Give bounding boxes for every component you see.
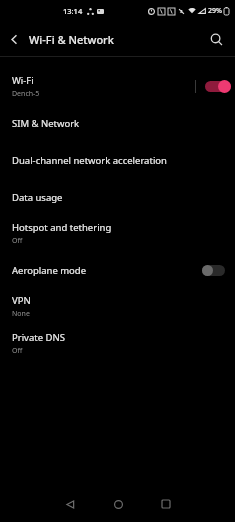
staticText: Dual-channel network acceleration bbox=[12, 154, 167, 167]
staticText: Hotspot and tethering bbox=[12, 221, 112, 234]
staticText: Data usage bbox=[12, 191, 63, 204]
button[interactable]: VPN bbox=[0, 288, 235, 325]
staticText: Dench-5 bbox=[12, 89, 40, 99]
button[interactable]: Private DNS bbox=[0, 325, 235, 362]
button[interactable]: Search bbox=[201, 24, 231, 54]
button[interactable]: SIM & Network bbox=[0, 105, 235, 142]
button[interactable]: Dual-channel network acceleration bbox=[0, 142, 235, 179]
staticText: Aeroplane mode bbox=[12, 264, 87, 277]
button[interactable]: Aeroplane mode toggle bbox=[202, 264, 225, 276]
staticText: None bbox=[12, 309, 30, 319]
staticText: Private DNS bbox=[12, 331, 65, 344]
button[interactable]: Hotspot and tethering bbox=[0, 215, 235, 252]
staticText: Wi-Fi bbox=[12, 74, 34, 87]
button[interactable]: Home bbox=[103, 489, 133, 519]
button[interactable]: Back bbox=[55, 489, 85, 519]
button[interactable]: Recents bbox=[151, 489, 181, 519]
staticText: Off bbox=[12, 236, 23, 246]
staticText: 29% bbox=[208, 6, 222, 16]
button[interactable]: Aeroplane mode bbox=[0, 252, 235, 288]
staticText: SIM & Network bbox=[12, 117, 80, 130]
button[interactable]: Back bbox=[0, 25, 28, 53]
button[interactable]: Wi-Fi toggle bbox=[205, 80, 231, 93]
button[interactable]: Wi-Fi bbox=[0, 67, 235, 105]
staticText: 13:14 bbox=[63, 6, 83, 16]
button[interactable]: Data usage bbox=[0, 179, 235, 215]
staticText: Wi-Fi & Network bbox=[29, 32, 114, 47]
staticText: Off bbox=[12, 346, 23, 356]
staticText: VPN bbox=[12, 294, 31, 307]
